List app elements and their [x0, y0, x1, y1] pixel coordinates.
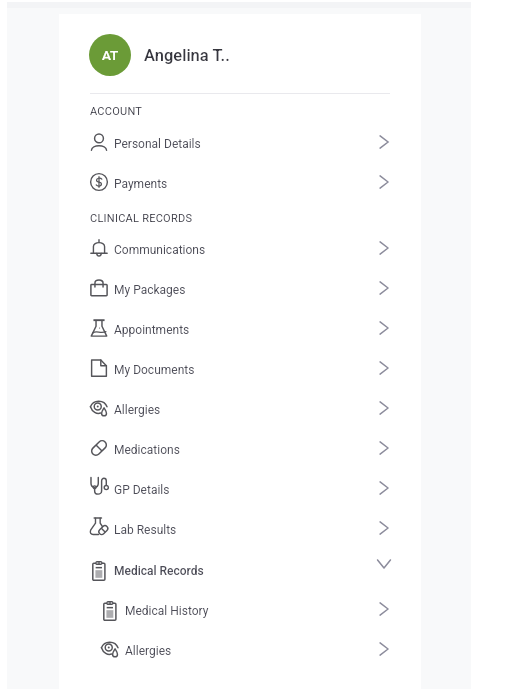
- staticText: Allergies: [125, 644, 172, 658]
- button[interactable]: Allergies: [59, 629, 421, 669]
- staticText: My Documents: [114, 363, 195, 377]
- button[interactable]: Medical History: [59, 589, 421, 629]
- button[interactable]: Payments: [59, 162, 421, 202]
- button[interactable]: Medications: [59, 428, 421, 468]
- button[interactable]: Personal Details: [59, 122, 421, 162]
- staticText: GP Details: [114, 483, 170, 497]
- staticText: Medications: [114, 443, 180, 457]
- button[interactable]: Medical Records: [59, 549, 421, 589]
- staticText: My Packages: [114, 283, 186, 297]
- staticText: CLINICAL RECORDS: [90, 212, 193, 225]
- staticText: ACCOUNT: [90, 105, 143, 118]
- staticText: Communications: [114, 243, 206, 257]
- staticText: Allergies: [114, 403, 161, 417]
- staticText: Angelina T..: [144, 46, 230, 65]
- staticText: Medical Records: [114, 564, 204, 578]
- staticText: Payments: [114, 177, 168, 191]
- staticText: Lab Results: [114, 523, 177, 537]
- staticText: Appointments: [114, 323, 190, 337]
- staticText: Personal Details: [114, 137, 201, 151]
- staticText: AT: [102, 47, 119, 63]
- button[interactable]: My Packages: [59, 268, 421, 308]
- button[interactable]: GP Details: [59, 468, 421, 508]
- button[interactable]: Appointments: [59, 308, 421, 348]
- button[interactable]: AT: [59, 28, 421, 82]
- button[interactable]: My Documents: [59, 348, 421, 388]
- staticText: Medical History: [125, 604, 209, 618]
- button[interactable]: Lab Results: [59, 508, 421, 548]
- button[interactable]: Allergies: [59, 388, 421, 428]
- button[interactable]: Communications: [59, 228, 421, 268]
